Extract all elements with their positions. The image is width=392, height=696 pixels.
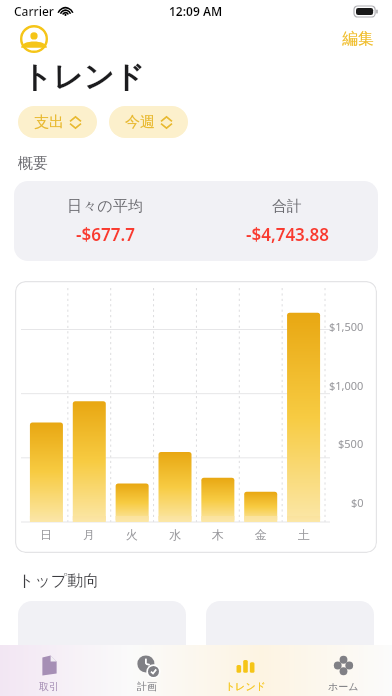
staticText: Carrier bbox=[14, 3, 54, 19]
button[interactable]: 編集 bbox=[340, 25, 376, 53]
staticText: トレンド bbox=[225, 680, 266, 693]
staticText: ホーム bbox=[328, 680, 359, 693]
staticText: 取引 bbox=[39, 680, 59, 693]
staticText: 日々の平均 bbox=[67, 197, 143, 216]
staticText: $1,500 bbox=[329, 319, 364, 334]
staticText: -$4,743.88 bbox=[246, 223, 329, 246]
staticText: $0 bbox=[351, 495, 364, 510]
staticText: 土 bbox=[298, 527, 310, 542]
button[interactable]: 今週 bbox=[109, 106, 188, 138]
staticText: 火 bbox=[126, 527, 138, 542]
staticText: 12:09 AM bbox=[169, 3, 223, 19]
staticText: 支出 bbox=[34, 113, 64, 132]
staticText: -$677.7 bbox=[76, 223, 135, 246]
button[interactable] bbox=[18, 601, 186, 671]
button[interactable]: 支出 bbox=[18, 106, 97, 138]
staticText: 今週 bbox=[125, 113, 155, 132]
button[interactable]: 計画 bbox=[98, 649, 196, 693]
staticText: トレンド bbox=[22, 58, 145, 96]
button[interactable]: トレンド bbox=[196, 649, 294, 693]
staticText: 水 bbox=[169, 527, 181, 542]
staticText: $1,000 bbox=[329, 378, 364, 393]
staticText: 概要 bbox=[18, 154, 48, 173]
button[interactable]: 取引 bbox=[0, 649, 98, 693]
button[interactable]: Profile bbox=[20, 25, 48, 53]
staticText: $500 bbox=[338, 436, 364, 451]
staticText: 合計 bbox=[272, 197, 302, 216]
staticText: 木 bbox=[212, 527, 224, 542]
button[interactable] bbox=[206, 601, 374, 671]
button[interactable]: $1,500 bbox=[15, 281, 377, 553]
staticText: 金 bbox=[255, 527, 267, 542]
button[interactable]: 日々の平均 bbox=[14, 181, 378, 261]
staticText: 編集 bbox=[342, 29, 374, 49]
staticText: 月 bbox=[83, 527, 95, 542]
staticText: 計画 bbox=[137, 680, 157, 693]
staticText: トップ動向 bbox=[18, 571, 100, 591]
staticText: 日 bbox=[40, 527, 52, 542]
button[interactable]: ホーム bbox=[294, 649, 392, 693]
